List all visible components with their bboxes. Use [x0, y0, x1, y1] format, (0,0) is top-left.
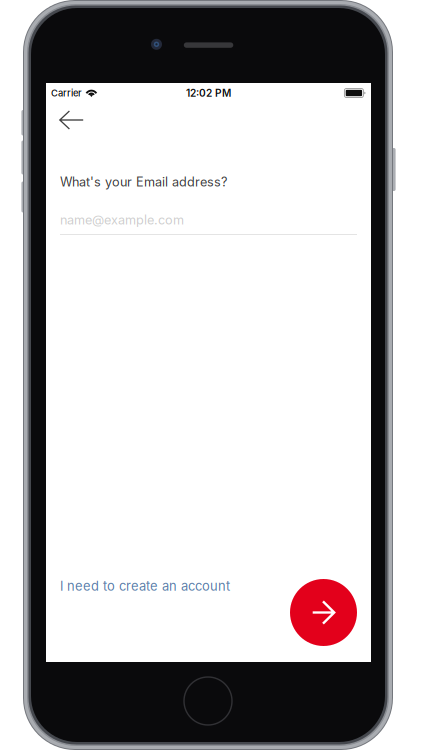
button[interactable]: I need to create an account [60, 579, 230, 593]
button[interactable]: Back [47, 103, 95, 137]
button[interactable]: Continue [290, 579, 357, 646]
staticText: Carrier [51, 87, 82, 99]
staticText: What's your Email address? [60, 174, 227, 190]
staticText: 12:02 PM [186, 87, 231, 99]
staticText: I need to create an account [60, 578, 230, 594]
staticText: name@example.com [60, 212, 184, 228]
